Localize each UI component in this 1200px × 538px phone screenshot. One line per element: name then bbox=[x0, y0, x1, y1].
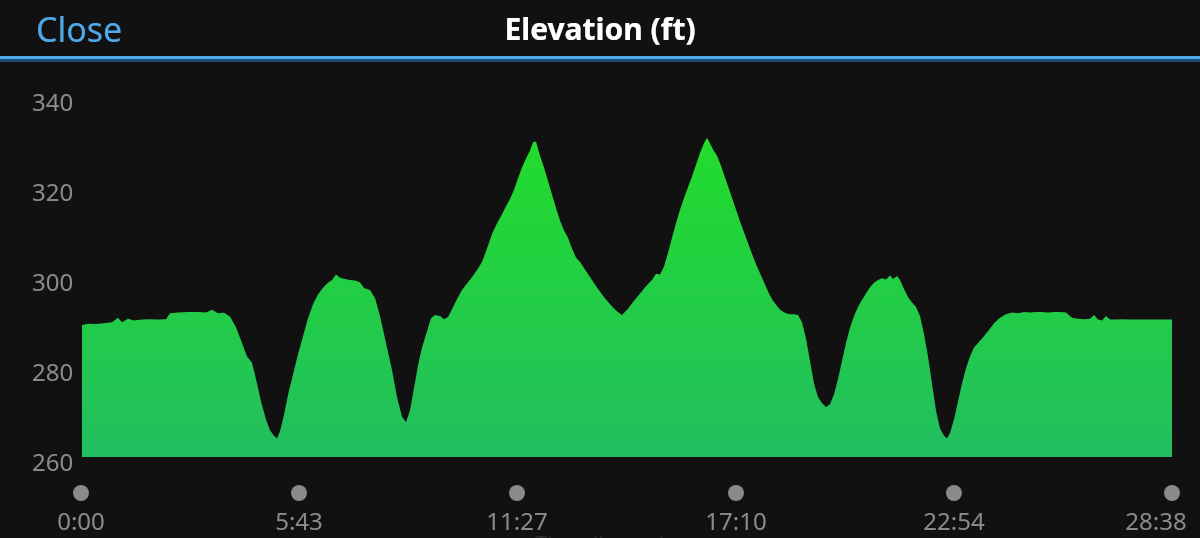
staticText: 300 bbox=[32, 265, 74, 295]
staticText: 0:00 bbox=[57, 504, 105, 534]
staticText: 260 bbox=[32, 445, 74, 475]
button[interactable]: Close bbox=[24, 0, 135, 57]
staticText: 22:54 bbox=[923, 504, 985, 534]
staticText: 17:10 bbox=[705, 504, 767, 534]
staticText: 28:38 bbox=[1125, 504, 1187, 534]
staticText: 320 bbox=[32, 175, 74, 205]
staticText: Close bbox=[36, 6, 123, 51]
staticText: Elevation (ft) bbox=[504, 8, 696, 49]
staticText: 280 bbox=[32, 355, 74, 385]
staticText: 11:27 bbox=[486, 504, 548, 534]
staticText: 340 bbox=[32, 85, 74, 115]
staticText: 5:43 bbox=[275, 504, 323, 534]
staticText: Time (h:mm) bbox=[535, 528, 666, 538]
